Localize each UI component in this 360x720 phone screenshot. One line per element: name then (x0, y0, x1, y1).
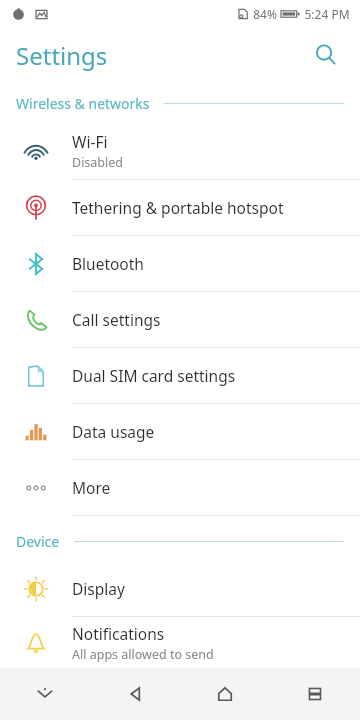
staticText: All apps allowed to send (72, 646, 214, 663)
staticText: Display (72, 578, 125, 599)
staticText: Call settings (72, 309, 161, 330)
button[interactable]: Tethering & portable hotspot (0, 180, 360, 236)
button[interactable]: Bluetooth (0, 236, 360, 292)
staticText: Data usage (72, 421, 155, 442)
button[interactable]: Call settings (0, 292, 360, 348)
staticText: Bluetooth (72, 253, 144, 274)
staticText: Wireless & networks (16, 94, 150, 113)
staticText: Notifications (72, 623, 165, 644)
staticText: Device (16, 532, 60, 551)
button[interactable]: Recent apps (270, 668, 360, 720)
button[interactable]: Search (304, 33, 348, 77)
button[interactable]: Wi-Fi (0, 123, 360, 180)
button[interactable]: Back (90, 668, 180, 720)
staticText: Disabled (72, 154, 124, 171)
button[interactable]: Home (180, 668, 270, 720)
staticText: More (72, 477, 111, 498)
staticText: Tethering & portable hotspot (72, 197, 284, 218)
button[interactable]: Data usage (0, 404, 360, 460)
button[interactable]: Dual SIM card settings (0, 348, 360, 404)
staticText: 84% (253, 6, 277, 22)
button[interactable]: Notifications (0, 617, 360, 668)
staticText: Dual SIM card settings (72, 365, 236, 386)
button[interactable]: Settings (16, 39, 108, 72)
staticText: Wi-Fi (72, 131, 108, 152)
button[interactable]: Hide navigation bar (0, 668, 90, 720)
staticText: 5:24 PM (304, 6, 350, 22)
staticText: Settings (16, 39, 108, 72)
button[interactable]: Display (0, 561, 360, 617)
button[interactable]: More (0, 460, 360, 516)
